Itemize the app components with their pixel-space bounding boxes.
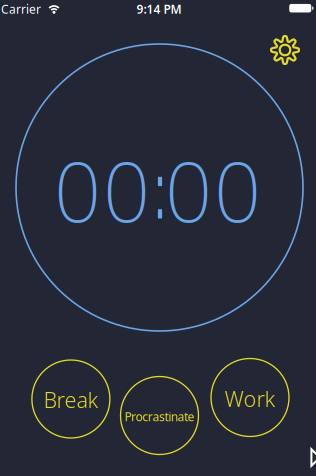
staticText: Work: [224, 384, 275, 413]
staticText: Carrier: [1, 1, 41, 17]
button[interactable]: Settings: [268, 33, 302, 67]
staticText: 9:14 PM: [136, 1, 181, 17]
staticText: 00: [54, 135, 150, 245]
button[interactable]: Procrastinate: [120, 376, 198, 454]
button[interactable]: Work: [211, 358, 289, 436]
staticText: Procrastinate: [124, 409, 195, 425]
button[interactable]: Break: [32, 360, 110, 438]
staticText: 00: [165, 135, 261, 245]
staticText: Break: [43, 386, 98, 414]
